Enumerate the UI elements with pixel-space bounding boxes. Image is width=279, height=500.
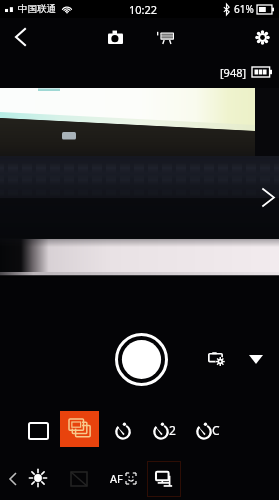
button[interactable]: Camera settings xyxy=(203,344,229,372)
button[interactable]: Next photo xyxy=(258,184,279,210)
staticText: AF xyxy=(110,471,123,486)
button[interactable]: Single shot xyxy=(29,423,48,439)
button[interactable]: Auto focus face detection xyxy=(110,470,136,486)
staticText: [948] xyxy=(220,65,247,80)
button[interactable]: Settings xyxy=(248,18,276,56)
button[interactable]: Video mode xyxy=(150,18,180,56)
button[interactable]: Shutter xyxy=(115,333,168,386)
staticText: 10:22 xyxy=(129,2,158,17)
button[interactable]: Self timer xyxy=(113,419,133,441)
button[interactable]: Self timer custom xyxy=(196,419,220,441)
staticText: 2 xyxy=(169,422,176,438)
button[interactable]: Previous page xyxy=(4,468,22,490)
staticText: 61% xyxy=(234,2,254,16)
staticText: 中国联通 xyxy=(18,3,56,15)
button[interactable]: More options xyxy=(243,346,269,372)
button[interactable]: Brightness xyxy=(26,466,50,490)
button[interactable]: Photo mode xyxy=(100,18,130,56)
button[interactable]: Self timer 2 seconds xyxy=(153,419,176,441)
button[interactable]: Image quality xyxy=(64,468,94,490)
button[interactable]: Live view display xyxy=(147,461,181,497)
button[interactable]: Back xyxy=(6,18,34,56)
staticText: C xyxy=(212,422,220,438)
button[interactable]: Burst shot xyxy=(60,411,99,447)
